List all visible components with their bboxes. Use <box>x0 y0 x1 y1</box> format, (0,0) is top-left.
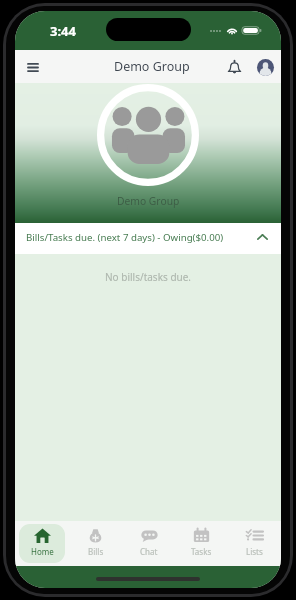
staticText: Home <box>31 546 54 557</box>
button[interactable]: Profile <box>253 55 277 79</box>
button[interactable]: Bills/Tasks due. (next 7 days) - Owing($… <box>15 223 281 254</box>
staticText: Bills <box>88 546 104 557</box>
button[interactable]: Open navigation menu <box>22 56 44 78</box>
button[interactable]: Chat <box>126 524 171 563</box>
button[interactable]: Lists <box>232 524 277 563</box>
staticText: Demo Group <box>117 194 180 208</box>
button[interactable]: Bills <box>73 524 118 563</box>
staticText: Lists <box>246 546 263 557</box>
staticText: Chat <box>140 546 158 557</box>
button[interactable]: Tasks <box>179 524 224 563</box>
staticText: Demo Group <box>114 58 190 75</box>
staticText: Tasks <box>191 546 212 557</box>
button[interactable]: Notifications <box>222 55 246 79</box>
staticText: Bills/Tasks due. (next 7 days) - Owing($… <box>26 231 257 244</box>
staticText: 3:44 <box>50 22 76 40</box>
staticText: No bills/tasks due. <box>105 270 192 284</box>
button[interactable]: Home <box>19 524 65 563</box>
